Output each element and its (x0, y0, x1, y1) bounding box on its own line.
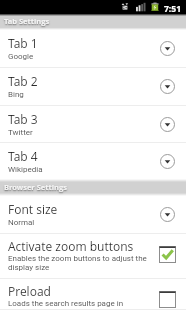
staticText: Loads the search results page in (8, 299, 124, 308)
staticText: Browser Settings (4, 182, 67, 192)
other: Open Font size options (160, 207, 175, 222)
staticText: Enables the zoom buttons to adjust the d… (8, 254, 155, 272)
staticText: Preload (8, 283, 51, 299)
staticText: Tab 3 (8, 111, 38, 127)
staticText: Activate zoom buttons (8, 238, 134, 254)
staticText: Wikipedia (8, 165, 43, 174)
staticText: Twitter (8, 128, 33, 137)
other: Open Tab 3 options (160, 117, 175, 132)
staticText: Tab 4 (8, 148, 38, 164)
staticText: Font size (8, 201, 58, 217)
button[interactable]: Preload (0, 279, 186, 310)
button[interactable]: Tab 4 (0, 143, 186, 179)
staticText: Normal (8, 218, 35, 227)
button[interactable]: Font size (0, 196, 186, 234)
other: Open Tab 1 options (160, 41, 175, 56)
staticText: Tab Settings (4, 16, 50, 26)
staticText: 7:51 (164, 3, 181, 15)
other: Open Tab 2 options (160, 79, 175, 94)
button[interactable]: Tab 3 (0, 106, 186, 143)
button[interactable]: Tab 2 (0, 68, 186, 106)
staticText: Tab 1 (8, 35, 38, 51)
button[interactable]: Tab 1 (0, 30, 186, 68)
staticText: Tab 2 (8, 73, 38, 89)
staticText: Google (8, 52, 34, 61)
staticText: Bing (8, 90, 24, 99)
button[interactable]: Activate zoom buttons (0, 234, 186, 279)
other: Open Tab 4 options (160, 154, 175, 169)
